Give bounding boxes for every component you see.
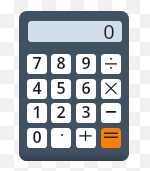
staticText: 5 xyxy=(56,79,66,97)
button[interactable]: 0 xyxy=(27,128,47,148)
staticText: 6 xyxy=(81,79,91,97)
staticText: 9 xyxy=(81,54,91,72)
button[interactable]: 1 xyxy=(27,103,47,123)
staticText: 0 xyxy=(103,21,115,39)
button[interactable]: 4 xyxy=(27,79,47,99)
button[interactable]: Multiply xyxy=(101,79,121,99)
staticText: 4 xyxy=(32,79,42,97)
button[interactable]: 3 xyxy=(76,103,96,123)
staticText: 7 xyxy=(32,54,42,72)
button[interactable]: 6 xyxy=(76,79,96,99)
staticText: 8 xyxy=(56,54,66,72)
staticText: 0 xyxy=(32,128,42,146)
button[interactable]: 8 xyxy=(51,54,71,74)
staticText: 1 xyxy=(32,103,42,121)
button[interactable]: Decimal point xyxy=(51,128,71,148)
button[interactable]: Equals xyxy=(101,128,121,148)
button[interactable]: 2 xyxy=(51,103,71,123)
staticText: 3 xyxy=(81,103,91,121)
button[interactable]: Add xyxy=(76,128,96,148)
button[interactable]: Divide xyxy=(101,54,121,74)
button[interactable]: Subtract xyxy=(101,103,121,123)
button[interactable]: 9 xyxy=(76,54,96,74)
button[interactable]: 5 xyxy=(51,79,71,99)
button[interactable]: 7 xyxy=(27,54,47,74)
staticText: 2 xyxy=(56,103,66,121)
